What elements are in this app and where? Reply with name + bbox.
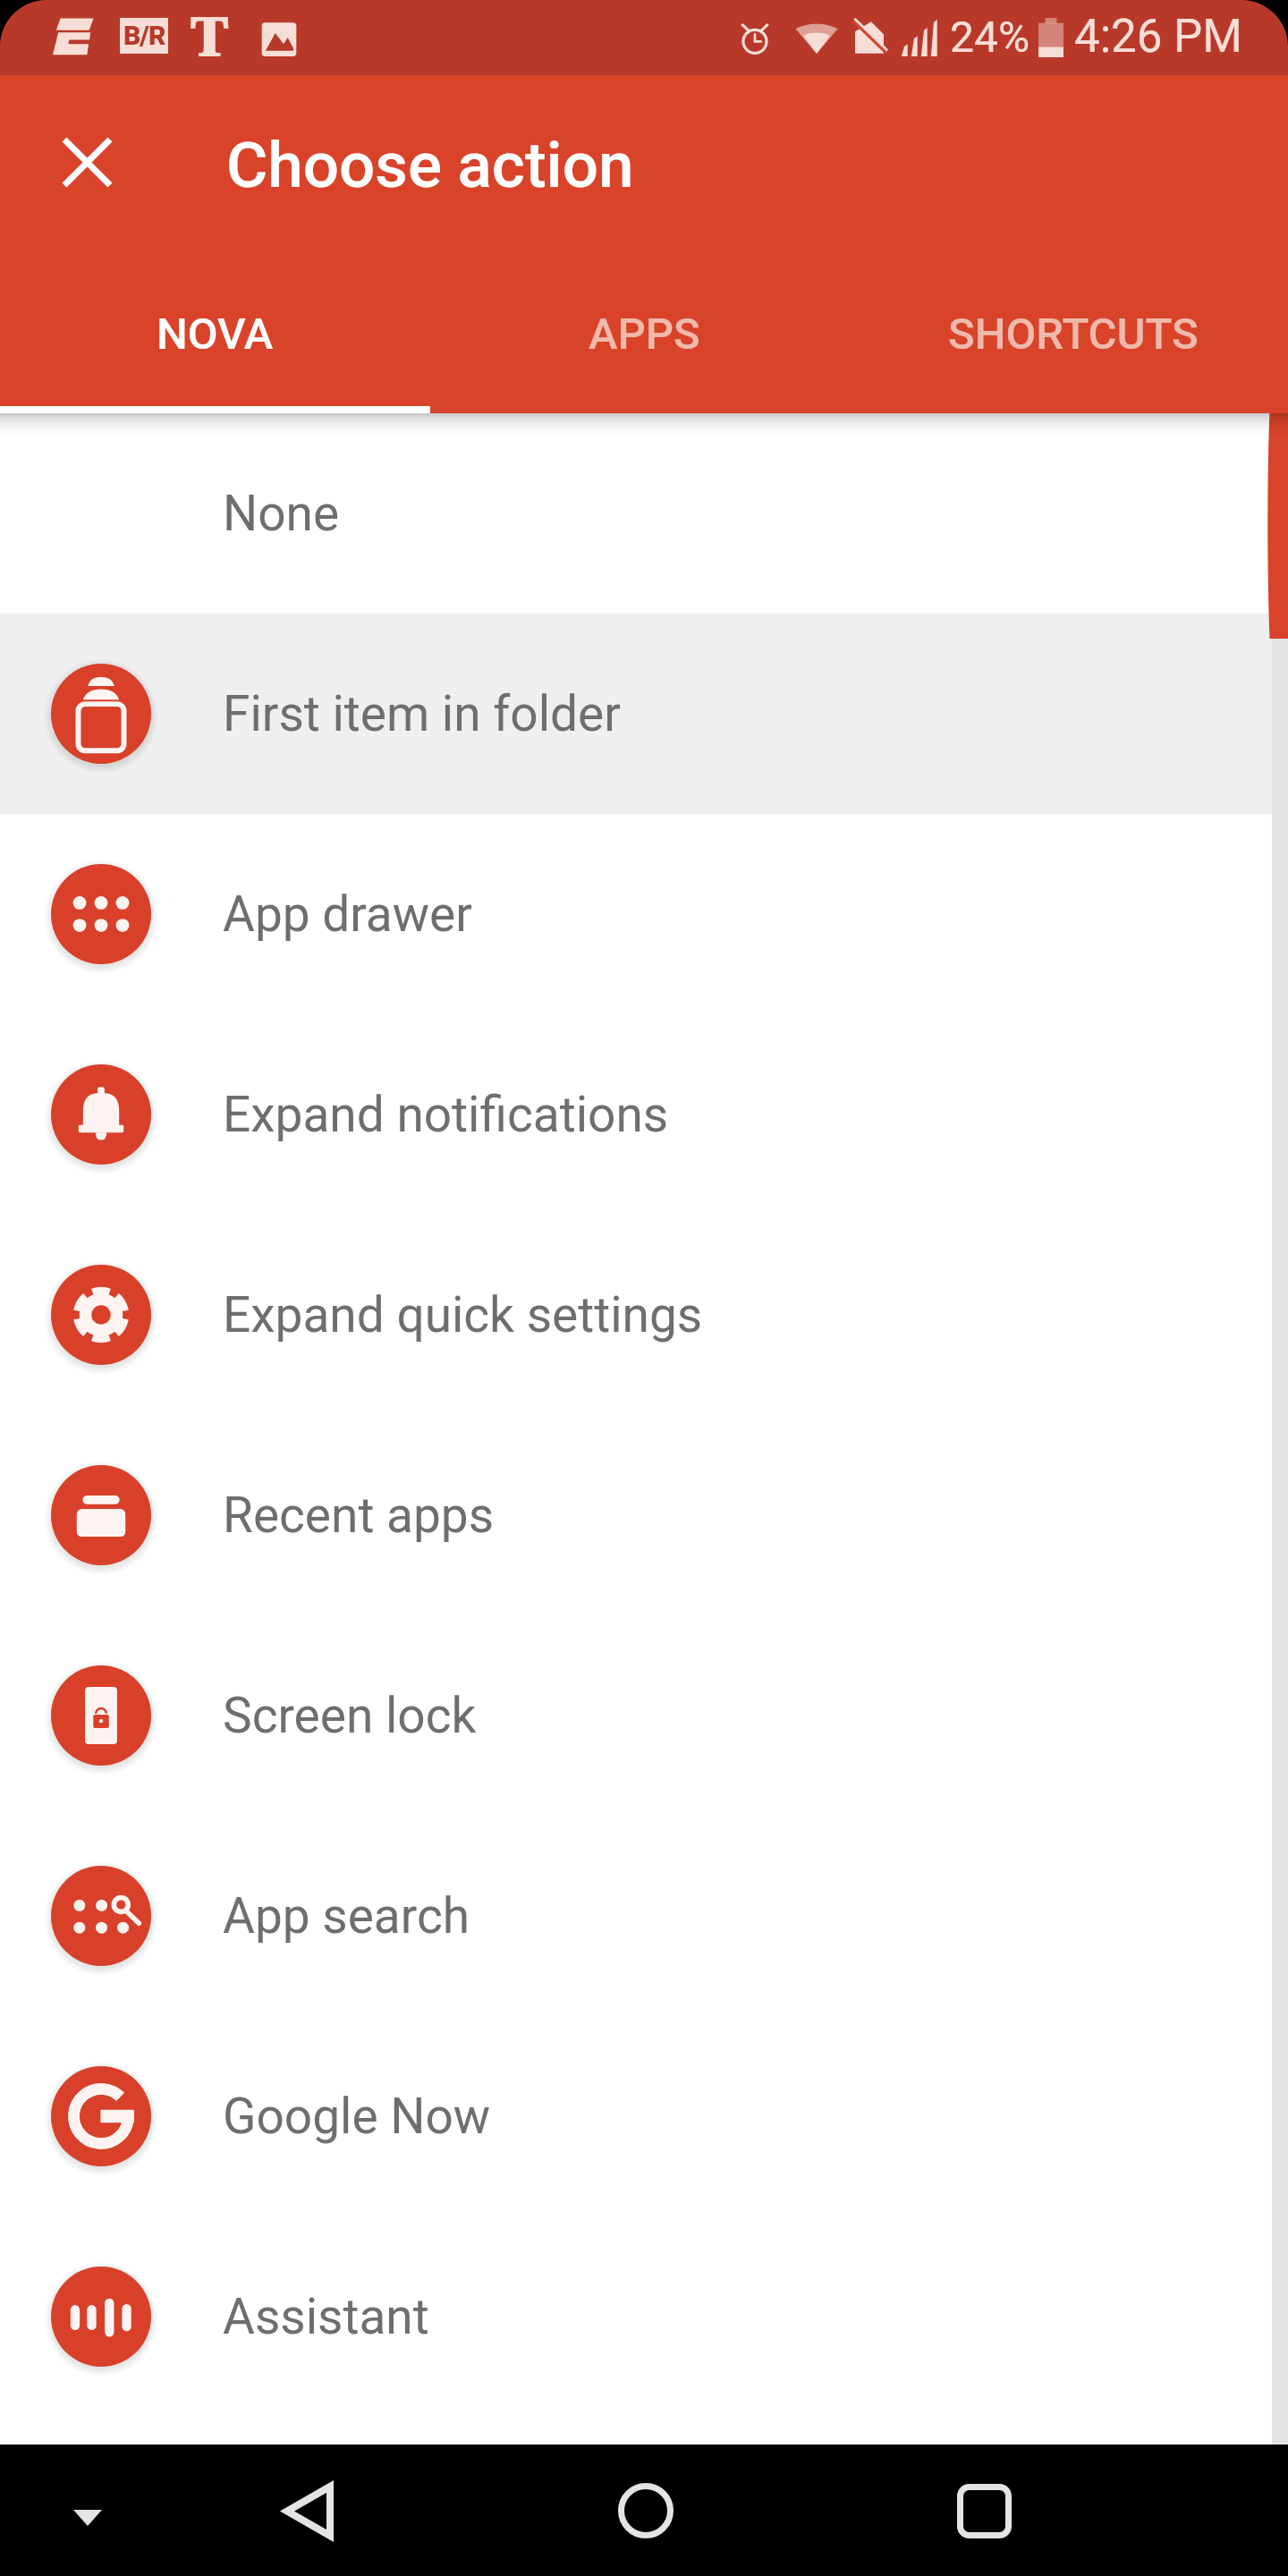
button[interactable]: Google Now — [0, 2016, 1288, 2216]
staticText: None — [223, 485, 340, 542]
button[interactable]: Expand notifications — [0, 1014, 1288, 1215]
button[interactable]: Close — [30, 105, 144, 219]
button[interactable]: Hide keyboard — [45, 2475, 131, 2561]
button[interactable]: App search — [0, 1816, 1288, 2016]
staticText: Google Now — [223, 2088, 491, 2145]
staticText: First item in folder — [223, 685, 621, 742]
staticText: Screen lock — [223, 1687, 477, 1744]
staticText: Expand notifications — [223, 1086, 669, 1143]
button[interactable]: APPS — [429, 293, 859, 413]
button[interactable]: Back — [255, 2457, 362, 2564]
button[interactable]: NOVA — [0, 293, 429, 413]
staticText: SHORTCUTS — [948, 309, 1199, 360]
button[interactable]: Expand quick settings — [0, 1215, 1288, 1415]
staticText: 4:26 PM — [1074, 10, 1242, 64]
staticText: App search — [223, 1887, 470, 1945]
staticText: APPS — [589, 309, 700, 360]
button[interactable]: Recent apps — [930, 2457, 1038, 2564]
staticText: Recent apps — [223, 1487, 495, 1544]
staticText: 24% — [950, 12, 1030, 62]
button[interactable]: First item in folder — [0, 614, 1288, 814]
staticText: NOVA — [157, 309, 274, 360]
button[interactable]: Assistant — [0, 2216, 1288, 2417]
button[interactable]: SHORTCUTS — [859, 293, 1288, 413]
staticText: T — [191, 0, 229, 72]
staticText: Choose action — [226, 128, 634, 202]
button[interactable]: Recent apps — [0, 1415, 1288, 1615]
staticText: B/R — [123, 20, 165, 51]
staticText: Assistant — [223, 2288, 429, 2345]
button[interactable]: Screen lock — [0, 1615, 1288, 1816]
button[interactable]: Home — [592, 2457, 699, 2564]
button[interactable]: None — [0, 413, 1288, 614]
staticText: App drawer — [223, 885, 472, 943]
button[interactable]: App drawer — [0, 814, 1288, 1014]
staticText: Expand quick settings — [223, 1286, 703, 1343]
